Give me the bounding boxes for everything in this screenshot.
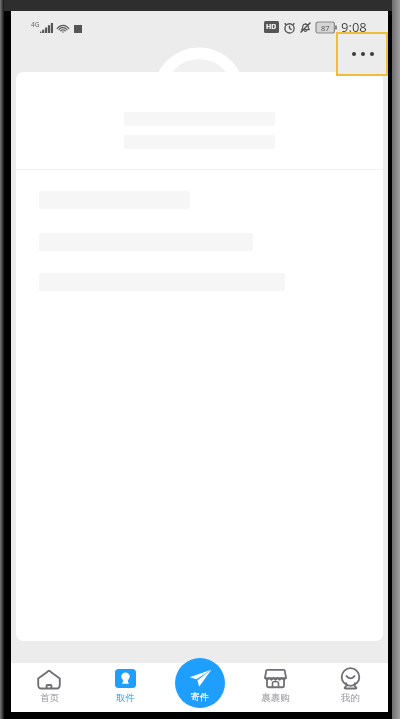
staticText: 寄件: [191, 691, 209, 702]
button[interactable]: 首页: [11, 663, 87, 712]
staticText: 我的: [341, 692, 360, 704]
staticText: 4G: [31, 20, 40, 29]
staticText: 87: [321, 23, 330, 33]
staticText: 9:08: [341, 18, 367, 36]
staticText: 首页: [40, 692, 59, 704]
staticText: 取件: [116, 692, 135, 704]
button[interactable]: 裹裹购: [238, 663, 313, 712]
button[interactable]: 取件: [87, 663, 163, 712]
staticText: HD: [266, 22, 277, 32]
staticText: 裹裹购: [261, 692, 290, 704]
button[interactable]: More options: [336, 32, 388, 76]
button[interactable]: 寄件: [175, 658, 225, 708]
button[interactable]: 我的: [313, 663, 388, 712]
